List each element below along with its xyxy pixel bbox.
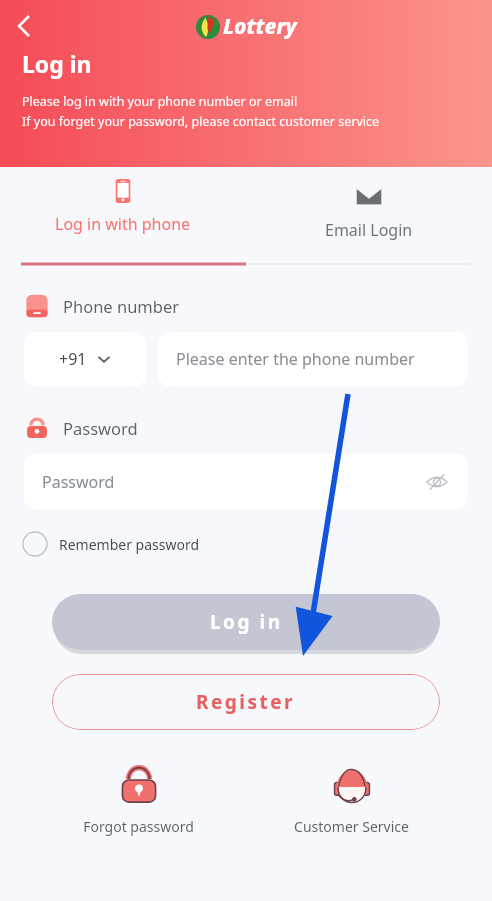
- staticText: +91: [59, 348, 87, 370]
- staticText: Log in: [22, 48, 92, 79]
- button[interactable]: Please enter the phone number: [158, 332, 468, 386]
- staticText: Lottery: [223, 12, 297, 41]
- button[interactable]: +91: [24, 332, 146, 386]
- button[interactable]: Customer Service: [276, 763, 427, 836]
- button[interactable]: Remember password: [22, 531, 200, 557]
- button[interactable]: Forgot password: [65, 763, 212, 836]
- button[interactable]: Email Login: [246, 167, 492, 267]
- staticText: Please enter the phone number: [176, 348, 415, 370]
- button[interactable]: Show password: [422, 467, 452, 497]
- button[interactable]: Password: [24, 454, 468, 509]
- staticText: Log in: [210, 609, 283, 635]
- staticText: Remember password: [59, 535, 200, 554]
- staticText: Log in with phone: [55, 213, 191, 235]
- staticText: Customer Service: [294, 817, 409, 836]
- staticText: Forgot password: [83, 817, 194, 836]
- button[interactable]: Log in: [52, 594, 440, 650]
- staticText: Register: [196, 689, 296, 715]
- staticText: If you forget your password, please cont…: [22, 113, 380, 130]
- staticText: Phone number: [63, 295, 180, 317]
- staticText: Password: [63, 417, 138, 439]
- staticText: Please log in with your phone number or …: [22, 93, 298, 110]
- button[interactable]: Register: [52, 674, 440, 730]
- staticText: Email Login: [325, 219, 413, 241]
- button[interactable]: Back: [6, 8, 42, 44]
- staticText: Password: [42, 471, 115, 493]
- button[interactable]: Log in with phone: [0, 167, 246, 267]
